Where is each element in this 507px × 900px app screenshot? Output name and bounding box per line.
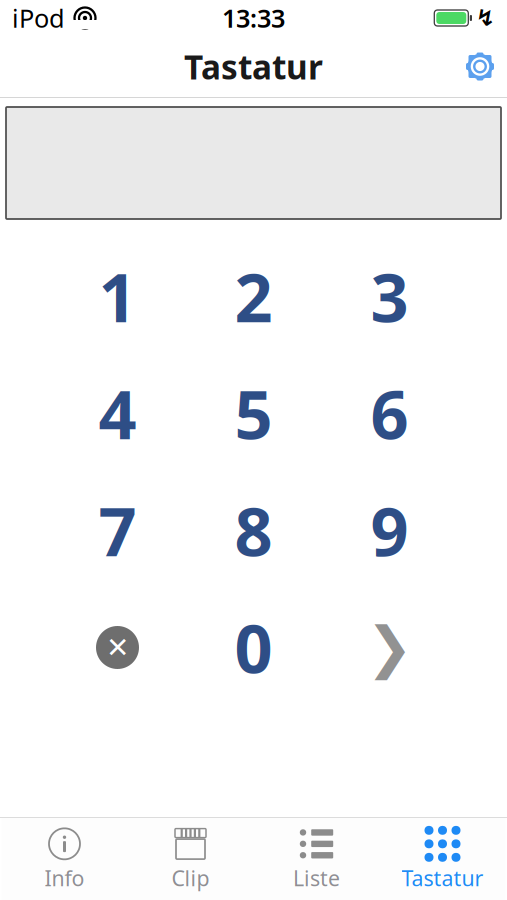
button[interactable]: 9	[321, 472, 457, 589]
staticText: ↯	[476, 5, 495, 31]
staticText: Liste	[293, 864, 340, 892]
staticText: Tastatur	[401, 864, 483, 892]
staticText: 0	[234, 603, 272, 692]
button[interactable]: Tastatur	[379, 819, 505, 899]
staticText: Tastatur	[184, 44, 323, 89]
staticText: 7	[98, 486, 136, 575]
staticText: 1	[98, 252, 136, 341]
button[interactable]: 2	[185, 238, 321, 355]
staticText: 5	[234, 369, 272, 458]
button[interactable]: Liste	[253, 819, 379, 899]
button[interactable]: 4	[49, 355, 185, 472]
staticText: 6	[370, 369, 408, 458]
button[interactable]: 0	[185, 589, 321, 706]
staticText: 9	[370, 486, 408, 575]
button[interactable]: 8	[185, 472, 321, 589]
staticText: 8	[234, 486, 272, 575]
button[interactable]: 6	[321, 355, 457, 472]
staticText: Clip	[171, 864, 209, 892]
staticText: ❯	[366, 616, 413, 679]
button[interactable]: Info	[1, 819, 127, 899]
staticText: 2	[234, 252, 272, 341]
staticText: 13:33	[222, 1, 285, 35]
button[interactable]: 1	[49, 238, 185, 355]
staticText: 3	[370, 252, 408, 341]
button[interactable]: Clip	[127, 819, 253, 899]
button[interactable]: 7	[49, 472, 185, 589]
staticText: 4	[98, 369, 136, 458]
staticText: iPod	[12, 1, 65, 35]
button[interactable]: 5	[185, 355, 321, 472]
button[interactable]: Submit	[321, 589, 457, 706]
button[interactable]: Settings	[453, 39, 507, 93]
staticText: Info	[44, 864, 84, 892]
button[interactable]: Clear	[49, 589, 185, 706]
button[interactable]: 3	[321, 238, 457, 355]
staticText: ✕	[106, 632, 129, 663]
